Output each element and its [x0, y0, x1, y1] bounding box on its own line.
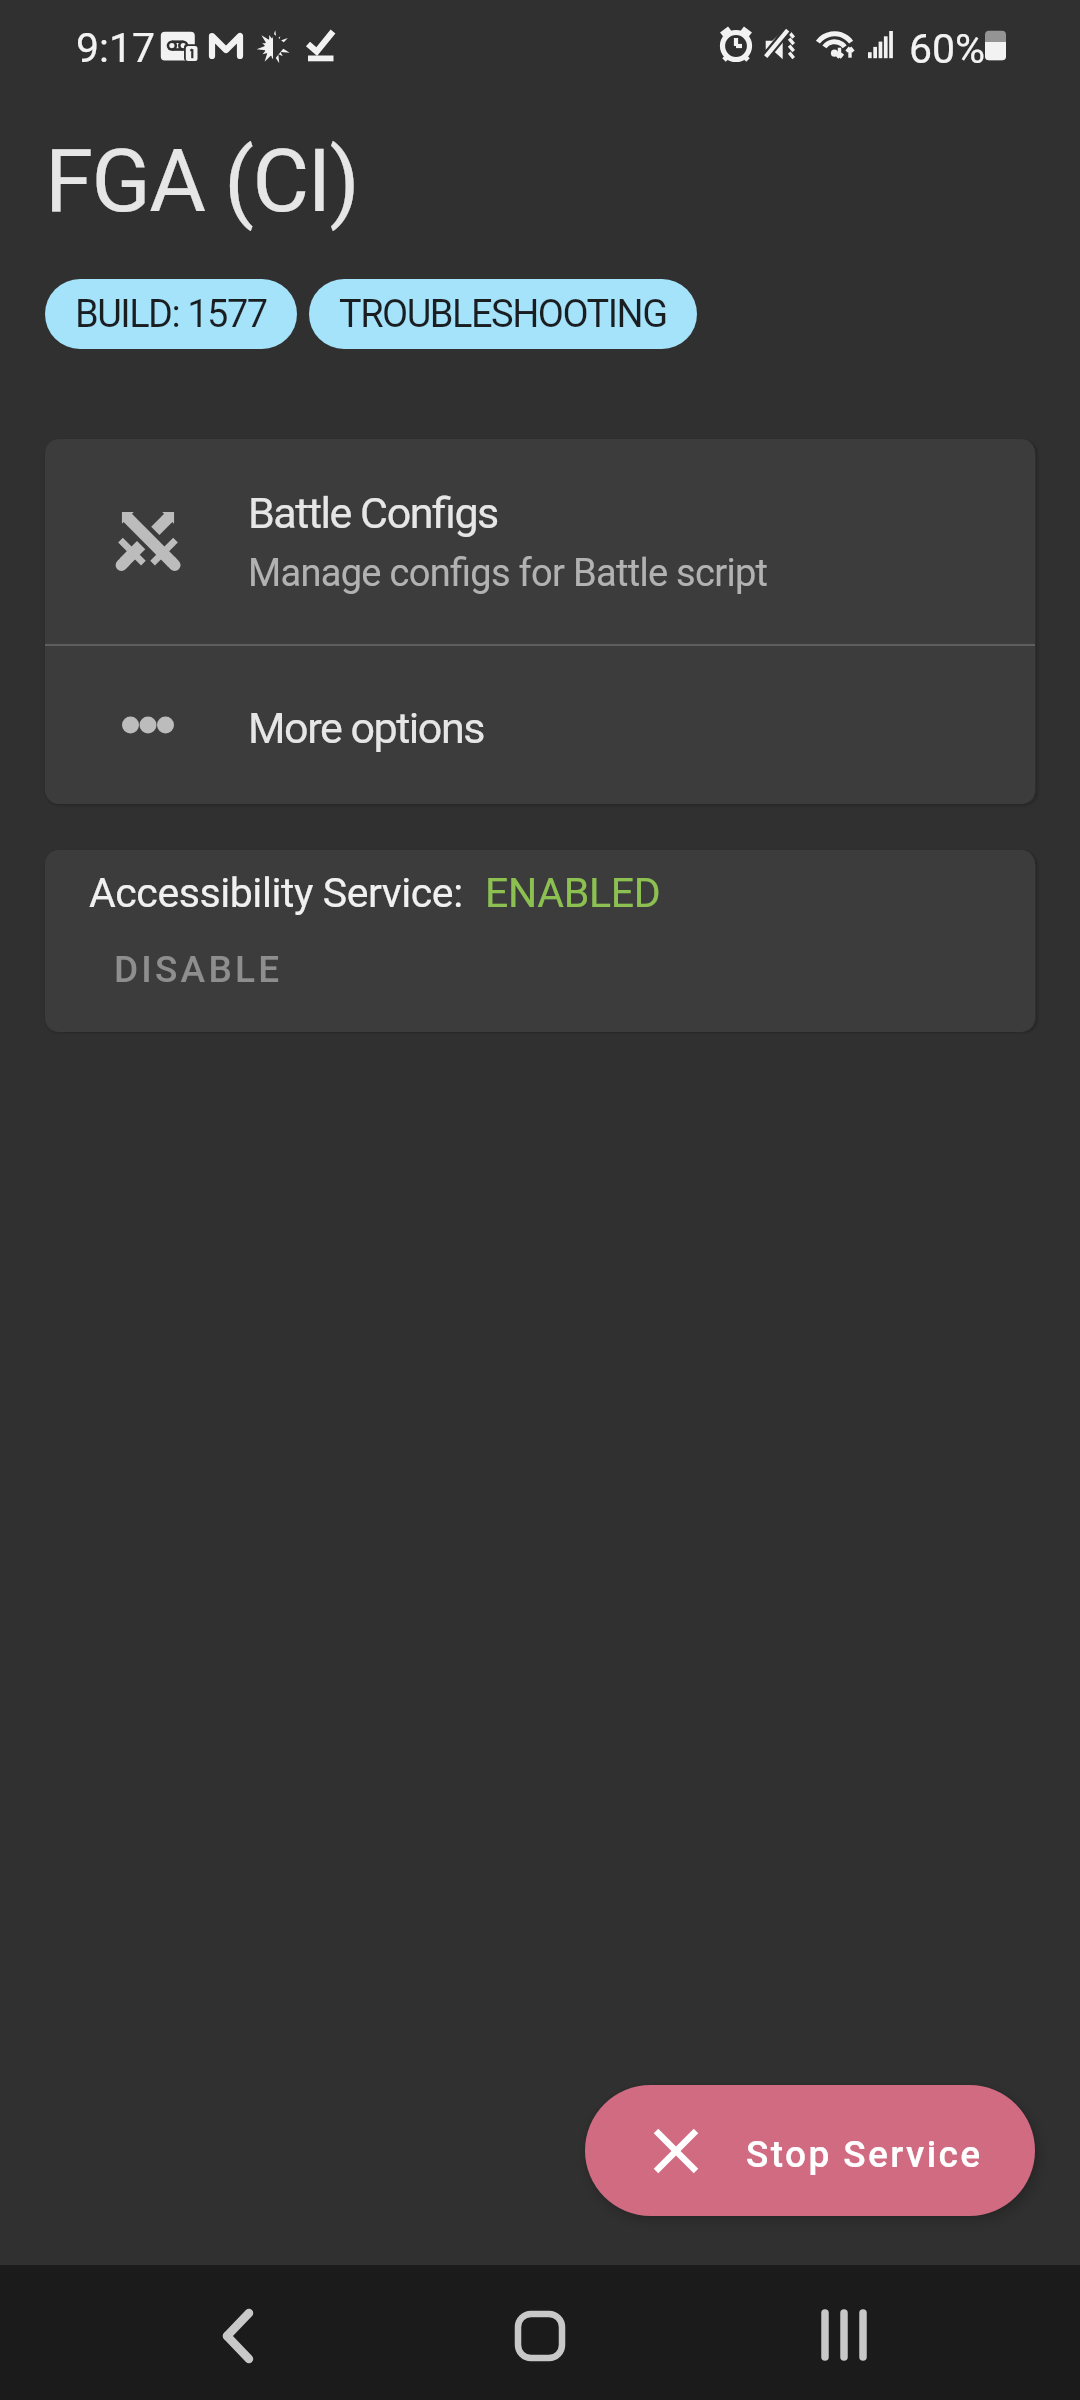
staticText: Accessibility Service: — [89, 869, 463, 917]
staticText: Stop Service — [746, 2133, 983, 2176]
staticText: ENABLED — [485, 869, 661, 917]
staticText: More options — [248, 703, 484, 753]
staticText: Manage configs for Battle script — [248, 551, 768, 596]
staticText: 9:17 — [76, 24, 156, 72]
button[interactable]: Back — [178, 2276, 298, 2396]
button[interactable]: DISABLE — [88, 940, 309, 999]
staticText: Battle Configs — [248, 488, 498, 538]
staticText: FGA (CI) — [45, 130, 359, 232]
button[interactable]: TROUBLESHOOTING — [309, 279, 697, 349]
staticText: 60% — [909, 25, 986, 73]
staticText: BUILD: 1577 — [75, 292, 267, 337]
button[interactable]: Recent apps — [787, 2276, 907, 2396]
staticText: DISABLE — [114, 948, 283, 991]
button[interactable]: Stop Service — [585, 2085, 1035, 2216]
staticText: TROUBLESHOOTING — [339, 292, 667, 337]
button[interactable]: Home — [480, 2276, 600, 2396]
button[interactable]: BUILD: 1577 — [45, 279, 297, 349]
button[interactable]: Battle Configs — [45, 439, 1035, 644]
button[interactable]: More options — [45, 646, 1035, 804]
